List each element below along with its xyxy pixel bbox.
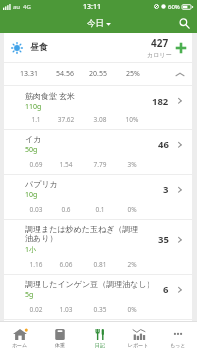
staticText: 日記 — [95, 342, 105, 348]
staticText: カロリー — [147, 51, 172, 59]
button[interactable]: 体重 — [40, 322, 80, 350]
staticText: 0.81 — [83, 260, 117, 269]
staticText: 2% — [115, 260, 149, 269]
staticText: 1.54 — [49, 160, 83, 169]
button[interactable]: ホーム — [0, 322, 40, 350]
staticText: au — [13, 3, 21, 11]
staticText: 体重 — [55, 342, 65, 348]
staticText: 調理または炒めた玉ねぎ（調理 油あり） — [25, 224, 139, 244]
staticText: 1.1 — [19, 115, 53, 124]
staticText: 6 — [163, 283, 169, 296]
staticText: 0.03 — [19, 205, 53, 214]
staticText: 0.1 — [83, 205, 117, 214]
staticText: 20.55 — [81, 69, 115, 79]
staticText: 10g — [25, 190, 38, 200]
staticText: 3% — [115, 160, 149, 169]
staticText: 427 — [151, 36, 169, 50]
staticText: 46 — [158, 138, 169, 151]
button[interactable]: 調理または炒めた玉ねぎ（調理 油あり） — [4, 220, 192, 275]
staticText: 25% — [116, 69, 150, 79]
button[interactable]: 筋肉食堂 玄米 — [4, 86, 192, 130]
staticText: 3 — [163, 183, 169, 196]
button[interactable]: 昼食 — [4, 33, 192, 62]
staticText: 54.56 — [48, 69, 82, 79]
staticText: 10% — [115, 115, 149, 124]
button[interactable]: Search — [175, 14, 193, 32]
button[interactable]: レポート — [119, 322, 158, 350]
staticText: イカ — [25, 134, 42, 144]
staticText: 35 — [158, 233, 169, 246]
staticText: 0.35 — [83, 305, 117, 314]
staticText: 5g — [25, 290, 34, 300]
staticText: ホーム — [12, 342, 28, 348]
staticText: 50g — [25, 145, 38, 155]
staticText: パプリカ — [25, 179, 58, 189]
staticText: 0.69 — [19, 160, 53, 169]
staticText: 調理したインゲン豆（調理油なし） — [25, 279, 149, 289]
staticText: 昼食 — [30, 42, 48, 53]
button[interactable]: 調理したインゲン豆（調理油なし） — [4, 275, 192, 320]
button[interactable]: 日記 — [80, 322, 119, 350]
staticText: 1.16 — [19, 260, 53, 269]
staticText: 筋肉食堂 玄米 — [25, 90, 76, 101]
staticText: 13.31 — [12, 69, 46, 79]
staticText: 37.62 — [49, 115, 83, 124]
staticText: 0.02 — [19, 305, 53, 314]
button[interactable]: 13.31 — [4, 63, 192, 85]
staticText: 7.79 — [83, 160, 117, 169]
staticText: 110g — [25, 102, 42, 112]
button[interactable]: もっと — [158, 322, 197, 350]
staticText: 0% — [115, 205, 149, 214]
button[interactable]: 今日 — [87, 18, 111, 29]
button[interactable]: パプリカ — [4, 175, 192, 220]
staticText: 今日 — [87, 18, 104, 29]
staticText: 0.6 — [49, 205, 83, 214]
staticText: 0% — [115, 305, 149, 314]
button[interactable]: Add food — [173, 40, 188, 55]
staticText: 13:11 — [83, 2, 101, 12]
staticText: 1小 — [25, 245, 37, 255]
staticText: 60% — [168, 3, 180, 11]
staticText: 182 — [152, 95, 169, 108]
button[interactable]: イカ — [4, 130, 192, 175]
staticText: もっと — [170, 342, 186, 348]
staticText: レポート — [128, 342, 149, 348]
staticText: 3.08 — [83, 115, 117, 124]
staticText: 1.03 — [49, 305, 83, 314]
staticText: 6.06 — [49, 260, 83, 269]
staticText: 4G — [23, 3, 31, 11]
